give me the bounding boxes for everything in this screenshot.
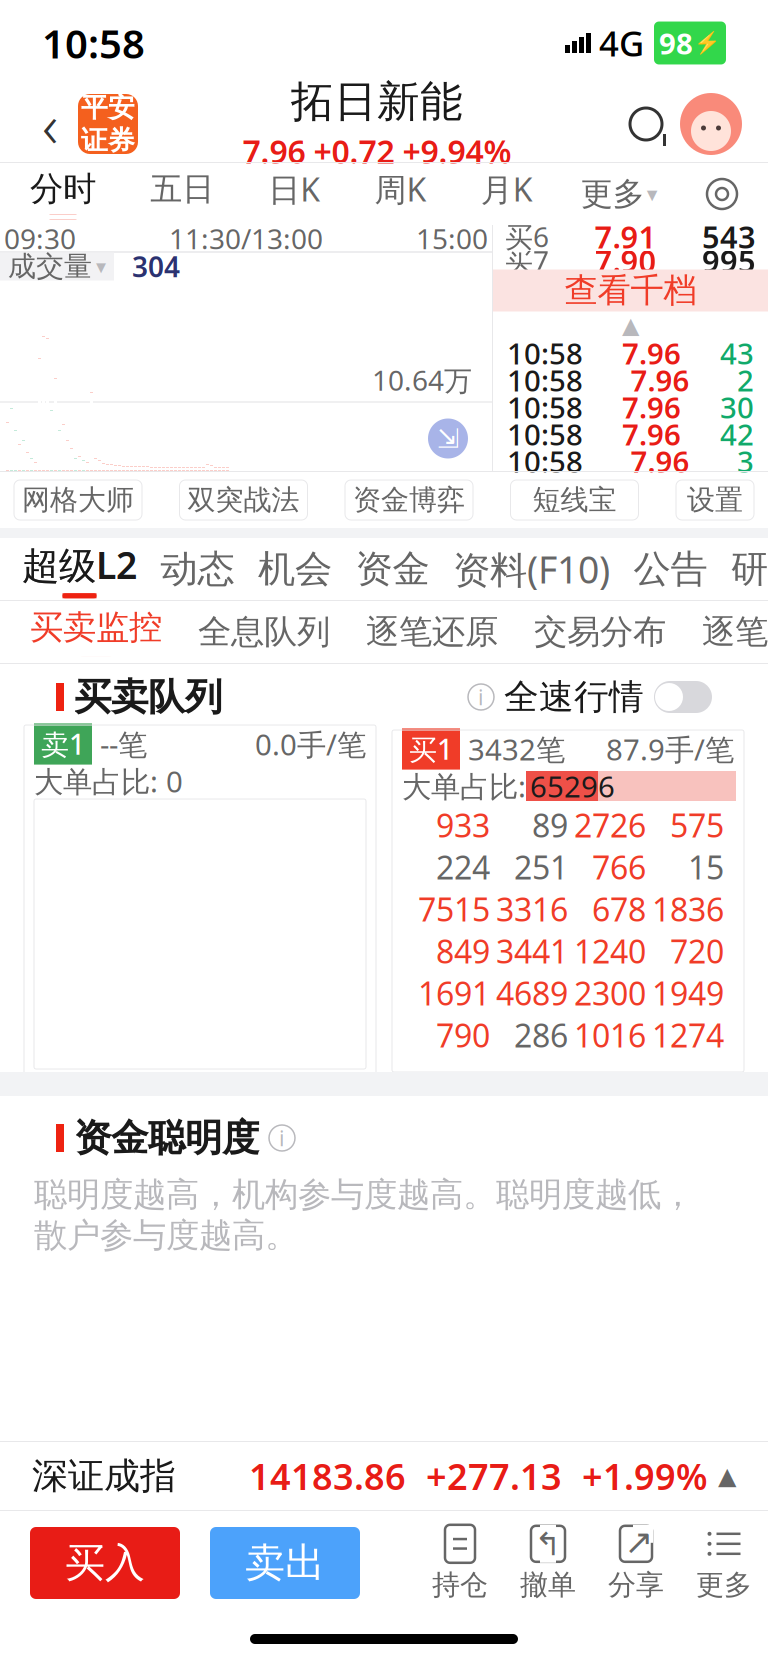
staticText: i <box>279 1124 285 1152</box>
staticText: 766 <box>592 846 646 888</box>
staticText: 买入 <box>65 1538 145 1587</box>
button[interactable]: 研 <box>731 546 768 592</box>
staticText: 买1 <box>409 730 453 768</box>
staticText: 超级L2 <box>22 540 137 589</box>
button[interactable]: ↰ <box>504 1524 592 1602</box>
staticText: 1240 <box>574 930 646 972</box>
staticText: 89 <box>532 804 568 846</box>
button[interactable]: 资金博弈 <box>345 480 473 520</box>
button[interactable]: 交易分布 <box>534 611 666 652</box>
button[interactable]: 逐笔还原 <box>366 611 498 652</box>
button[interactable]: 短线宝 <box>510 480 638 520</box>
staticText: 304 <box>132 248 180 285</box>
staticText: ▾ <box>96 255 106 278</box>
staticText: 持仓 <box>432 1568 488 1602</box>
staticText: 1949 <box>652 972 724 1014</box>
button[interactable]: 持仓 <box>416 1524 504 1602</box>
staticText: 五日 <box>150 169 214 209</box>
staticText: 3316 <box>496 888 568 930</box>
button[interactable]: 平安证券 <box>78 94 138 154</box>
button[interactable]: 五日 <box>144 169 220 219</box>
button[interactable]: 公告 <box>633 546 707 592</box>
button[interactable]: Settings <box>700 172 744 216</box>
button[interactable]: 动态 <box>160 546 234 592</box>
staticText: 大单占比: <box>402 766 526 805</box>
button[interactable]: 网格大师 <box>14 480 142 520</box>
staticText: 周K <box>374 168 426 210</box>
staticText: 更多 <box>696 1568 752 1602</box>
staticText: 全息队列 <box>198 611 330 652</box>
button[interactable]: ↗ <box>592 1524 680 1602</box>
staticText: 3 <box>737 441 754 480</box>
button[interactable]: 双突战法 <box>179 480 307 520</box>
button[interactable]: 机会 <box>258 546 332 592</box>
staticText: 双突战法 <box>187 483 299 517</box>
staticText: 1016 <box>574 1014 646 1056</box>
staticText: 买6 <box>505 218 549 255</box>
staticText: 拓日新能 <box>291 75 463 128</box>
staticText: 30 <box>720 387 754 426</box>
staticText: 10:58 <box>507 387 583 426</box>
staticText: 研 <box>731 546 768 592</box>
button[interactable]: 月K <box>475 168 539 220</box>
staticText: ‹ <box>42 83 58 165</box>
button[interactable]: 资料(F10) <box>453 544 610 594</box>
staticText: +1.99% <box>582 1452 708 1500</box>
staticText: 超级L2 <box>22 540 137 589</box>
staticText: 网格大师 <box>22 483 134 517</box>
staticText: 995 <box>702 240 756 281</box>
staticText: 11:30/13:00 <box>169 220 323 257</box>
button[interactable]: 更多 <box>581 174 658 214</box>
button[interactable]: 深证成指 <box>0 1442 768 1510</box>
staticText: 2 <box>737 360 754 399</box>
staticText: ▲ <box>622 313 639 338</box>
button[interactable]: 查看千档 <box>493 269 768 311</box>
staticText: ▲ <box>718 1462 736 1490</box>
staticText: 10:58 <box>507 360 583 399</box>
button[interactable]: 买卖监控 <box>30 607 162 657</box>
staticText: 7.96 +0.72 +9.94% <box>242 130 511 172</box>
staticText: 深证成指 <box>32 1454 176 1498</box>
button[interactable]: 更多 <box>680 1524 768 1602</box>
button[interactable]: 超级L2 <box>22 540 137 598</box>
button[interactable]: 周K <box>368 168 432 220</box>
staticText: 设置 <box>687 483 743 517</box>
staticText: 15 <box>688 846 724 888</box>
button[interactable]: 买入 <box>30 1527 180 1599</box>
staticText: 543 <box>702 216 756 257</box>
staticText: 65296 <box>530 766 615 805</box>
button[interactable]: 分时 <box>24 168 102 219</box>
staticText: 4G <box>599 20 644 66</box>
staticText: ↰ <box>534 1526 561 1562</box>
staticText: 平安 <box>81 91 135 124</box>
button[interactable]: 设置 <box>676 480 754 520</box>
staticText: 10:58 <box>42 16 145 69</box>
staticText: 卖1 <box>41 725 85 763</box>
staticText: 证券 <box>81 124 135 157</box>
staticText: 成交量 <box>8 249 92 284</box>
button[interactable]: Profile <box>676 89 746 159</box>
button[interactable]: 卖出 <box>210 1527 360 1599</box>
button[interactable]: 全息队列 <box>198 611 330 652</box>
staticText: 聪明度越高，机构参与度越高。聪明度越低，散户参与度越高。 <box>34 1174 694 1256</box>
button[interactable]: Search <box>616 94 676 154</box>
button[interactable]: 日K <box>262 168 326 220</box>
staticText: 2300 <box>574 972 646 1014</box>
button[interactable]: i <box>468 676 712 718</box>
staticText: 286 <box>514 1014 568 1056</box>
staticText: 短线宝 <box>532 483 616 517</box>
staticText: 7515 <box>418 888 490 930</box>
button[interactable]: Back <box>22 92 78 156</box>
staticText: ↗ <box>624 1522 653 1561</box>
staticText: 10:58 <box>507 333 583 372</box>
staticText: 7.96 <box>622 387 681 426</box>
staticText: 卖出 <box>245 1538 325 1587</box>
staticText: --笔 <box>100 724 147 763</box>
staticText: 10:58 <box>507 441 583 480</box>
staticText: 933 <box>436 804 490 846</box>
staticText: 月K <box>481 168 533 210</box>
staticText: 3432笔 <box>468 729 565 768</box>
staticText: 849 <box>436 930 490 972</box>
button[interactable]: 资金 <box>355 546 429 592</box>
button[interactable]: 逐笔 <box>702 611 768 652</box>
